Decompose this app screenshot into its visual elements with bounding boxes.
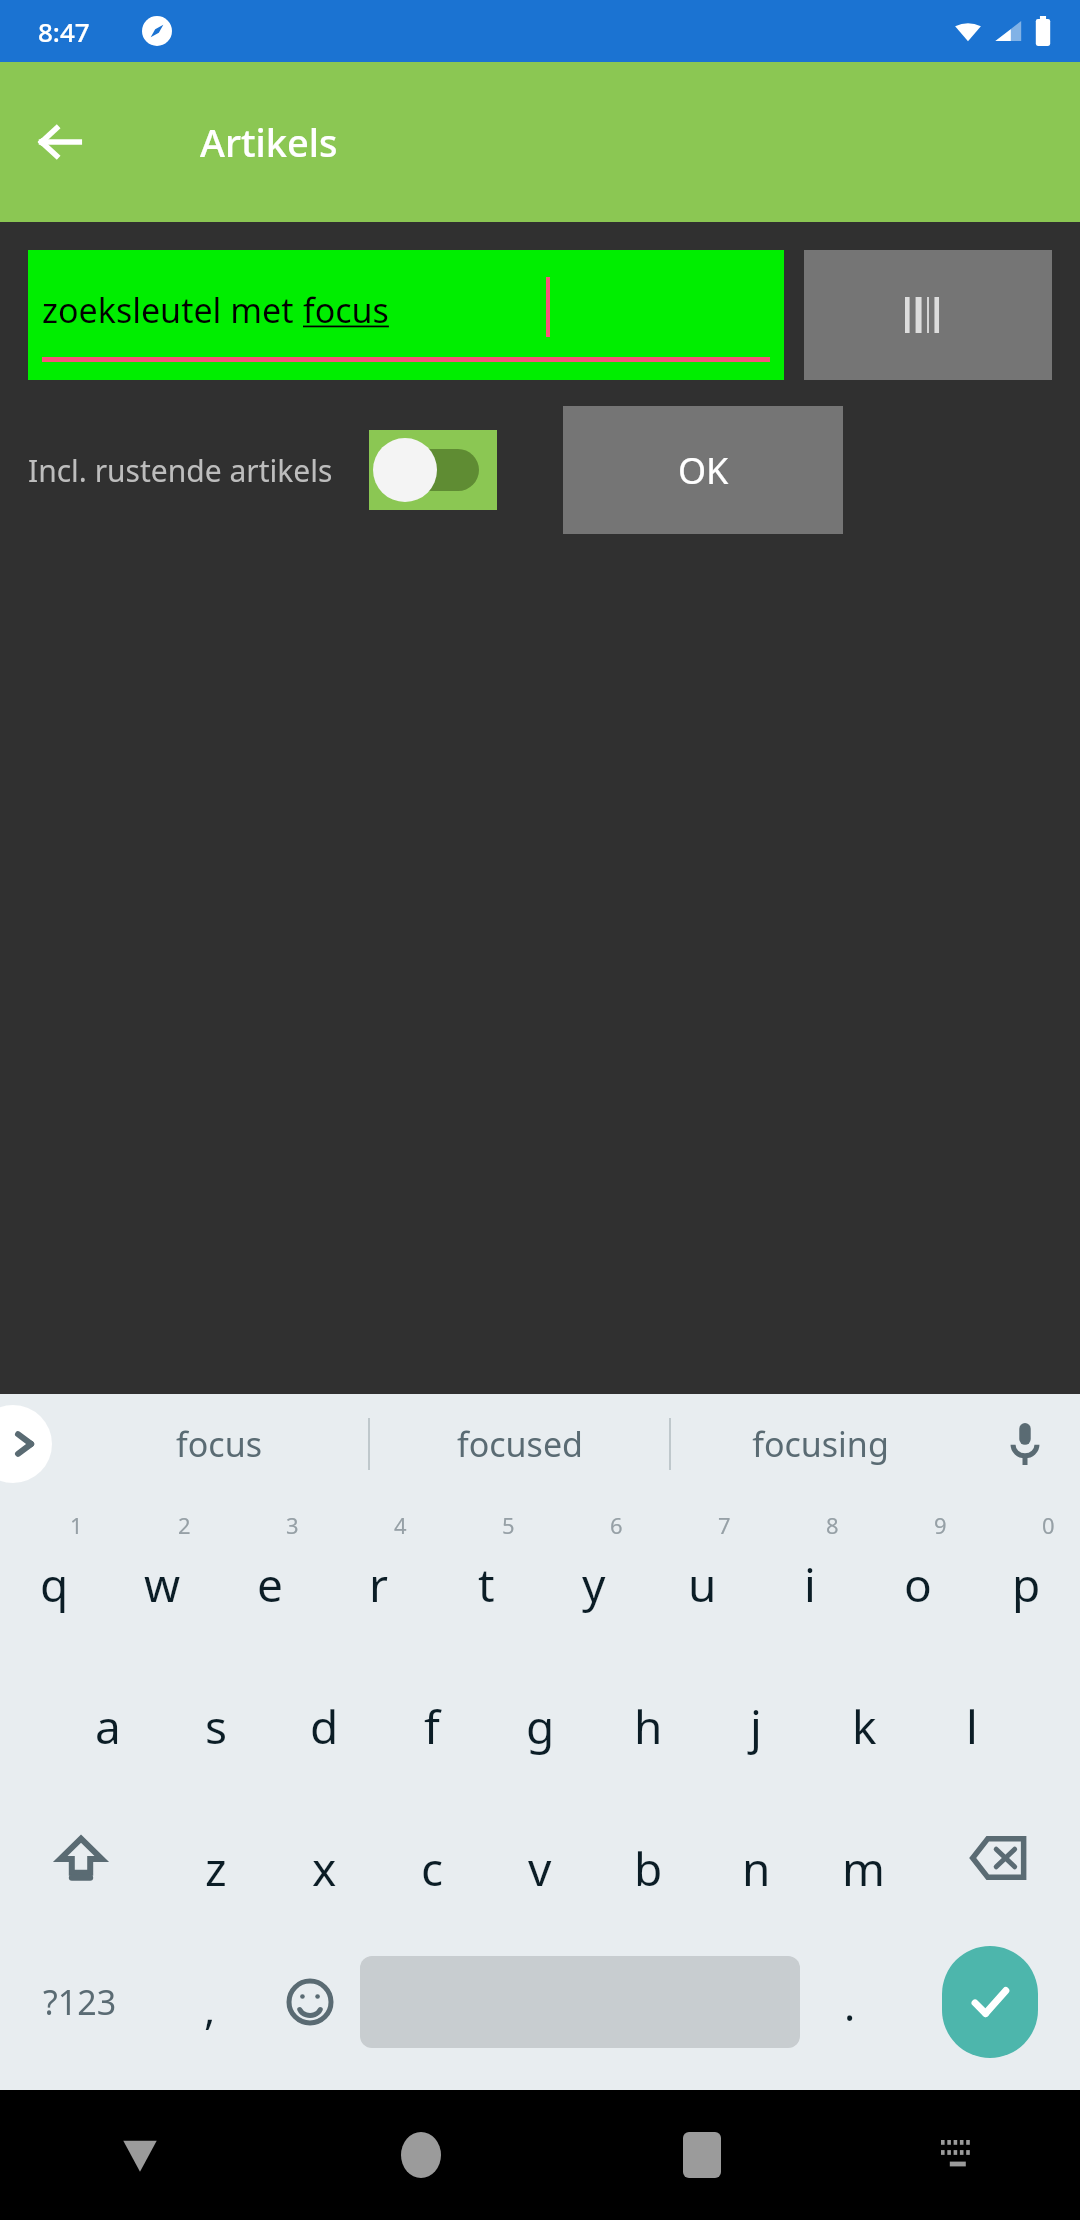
staticText: k: [852, 1695, 877, 1758]
staticText: v: [528, 1837, 552, 1900]
button[interactable]: ,: [160, 1934, 260, 2070]
staticText: s: [205, 1695, 228, 1758]
staticText: g: [526, 1695, 555, 1758]
button[interactable]: n: [702, 1792, 810, 1924]
staticText: x: [312, 1837, 337, 1900]
staticText: zoeksleutel met: [42, 287, 303, 333]
staticText: .: [844, 1976, 856, 2033]
staticText: c: [421, 1837, 444, 1900]
button[interactable]: Back: [22, 104, 98, 180]
staticText: u: [688, 1553, 717, 1616]
button[interactable]: Shift: [0, 1792, 162, 1924]
button[interactable]: 3: [216, 1508, 324, 1640]
staticText: 1: [70, 1510, 83, 1540]
staticText: w: [144, 1553, 181, 1616]
staticText: 7: [718, 1510, 731, 1540]
staticText: OK: [678, 446, 729, 495]
button[interactable]: 7: [648, 1508, 756, 1640]
button[interactable]: v: [486, 1792, 594, 1924]
staticText: y: [582, 1553, 606, 1616]
button[interactable]: d: [270, 1650, 378, 1782]
staticText: Incl. rustende artikels: [28, 450, 333, 491]
staticText: 4: [394, 1510, 407, 1540]
button[interactable]: 6: [540, 1508, 648, 1640]
button[interactable]: j: [702, 1650, 810, 1782]
staticText: n: [742, 1837, 771, 1900]
staticText: 3: [286, 1510, 299, 1540]
staticText: o: [904, 1553, 932, 1616]
staticText: 8: [826, 1510, 839, 1540]
staticText: t: [478, 1553, 495, 1616]
button[interactable]: b: [594, 1792, 702, 1924]
button[interactable]: Enter: [942, 1946, 1038, 2058]
staticText: r: [369, 1553, 388, 1616]
button[interactable]: Scan barcode: [804, 250, 1052, 380]
button[interactable]: Emoji: [260, 1934, 360, 2070]
button[interactable]: focusing: [671, 1394, 970, 1494]
button[interactable]: Voice input: [970, 1394, 1080, 1494]
staticText: q: [40, 1553, 69, 1616]
staticText: 5: [502, 1510, 515, 1540]
staticText: b: [634, 1837, 663, 1900]
staticText: 6: [610, 1510, 623, 1540]
staticText: focus: [176, 1421, 262, 1467]
staticText: focus: [303, 287, 389, 333]
button[interactable]: 8: [756, 1508, 864, 1640]
button[interactable]: ?123: [0, 1934, 160, 2070]
staticText: focusing: [752, 1421, 889, 1467]
button[interactable]: Switch keyboard: [842, 2090, 1080, 2220]
button[interactable]: [369, 430, 497, 510]
staticText: p: [1012, 1553, 1041, 1616]
button[interactable]: 2: [108, 1508, 216, 1640]
button[interactable]: g: [486, 1650, 594, 1782]
button[interactable]: l: [918, 1650, 1026, 1782]
staticText: 2: [178, 1510, 191, 1540]
staticText: Artikels: [200, 116, 338, 168]
button[interactable]: 4: [324, 1508, 432, 1640]
button[interactable]: z: [162, 1792, 270, 1924]
button[interactable]: m: [810, 1792, 918, 1924]
button[interactable]: f: [378, 1650, 486, 1782]
staticText: 9: [934, 1510, 947, 1540]
button[interactable]: s: [162, 1650, 270, 1782]
button[interactable]: Backspace: [918, 1792, 1080, 1924]
button[interactable]: h: [594, 1650, 702, 1782]
staticText: 8:47: [38, 14, 90, 49]
staticText: a: [95, 1695, 121, 1758]
staticText: i: [804, 1553, 816, 1616]
button[interactable]: 5: [432, 1508, 540, 1640]
button[interactable]: zoeksleutel met: [28, 250, 784, 380]
button[interactable]: a: [54, 1650, 162, 1782]
button[interactable]: Home: [280, 2090, 561, 2220]
button[interactable]: Recents: [561, 2090, 842, 2220]
staticText: e: [257, 1553, 283, 1616]
button[interactable]: 1: [0, 1508, 108, 1640]
staticText: ?123: [43, 1979, 117, 2025]
staticText: 0: [1042, 1510, 1055, 1540]
staticText: d: [310, 1695, 339, 1758]
staticText: l: [966, 1695, 978, 1758]
button[interactable]: focus: [70, 1394, 368, 1494]
staticText: m: [842, 1837, 886, 1900]
staticText: j: [750, 1695, 762, 1758]
button[interactable]: .: [800, 1934, 900, 2070]
button[interactable]: focused: [370, 1394, 669, 1494]
button[interactable]: 0: [972, 1508, 1080, 1640]
button[interactable]: k: [810, 1650, 918, 1782]
button[interactable]: 9: [864, 1508, 972, 1640]
button[interactable]: Back: [0, 2090, 280, 2220]
staticText: h: [634, 1695, 663, 1758]
button[interactable]: c: [378, 1792, 486, 1924]
staticText: z: [205, 1837, 227, 1900]
staticText: focused: [457, 1421, 583, 1467]
button[interactable]: x: [270, 1792, 378, 1924]
staticText: ,: [204, 1980, 216, 2037]
button[interactable]: OK: [563, 406, 843, 534]
staticText: f: [424, 1695, 440, 1758]
button[interactable]: Expand toolbar: [0, 1405, 52, 1483]
